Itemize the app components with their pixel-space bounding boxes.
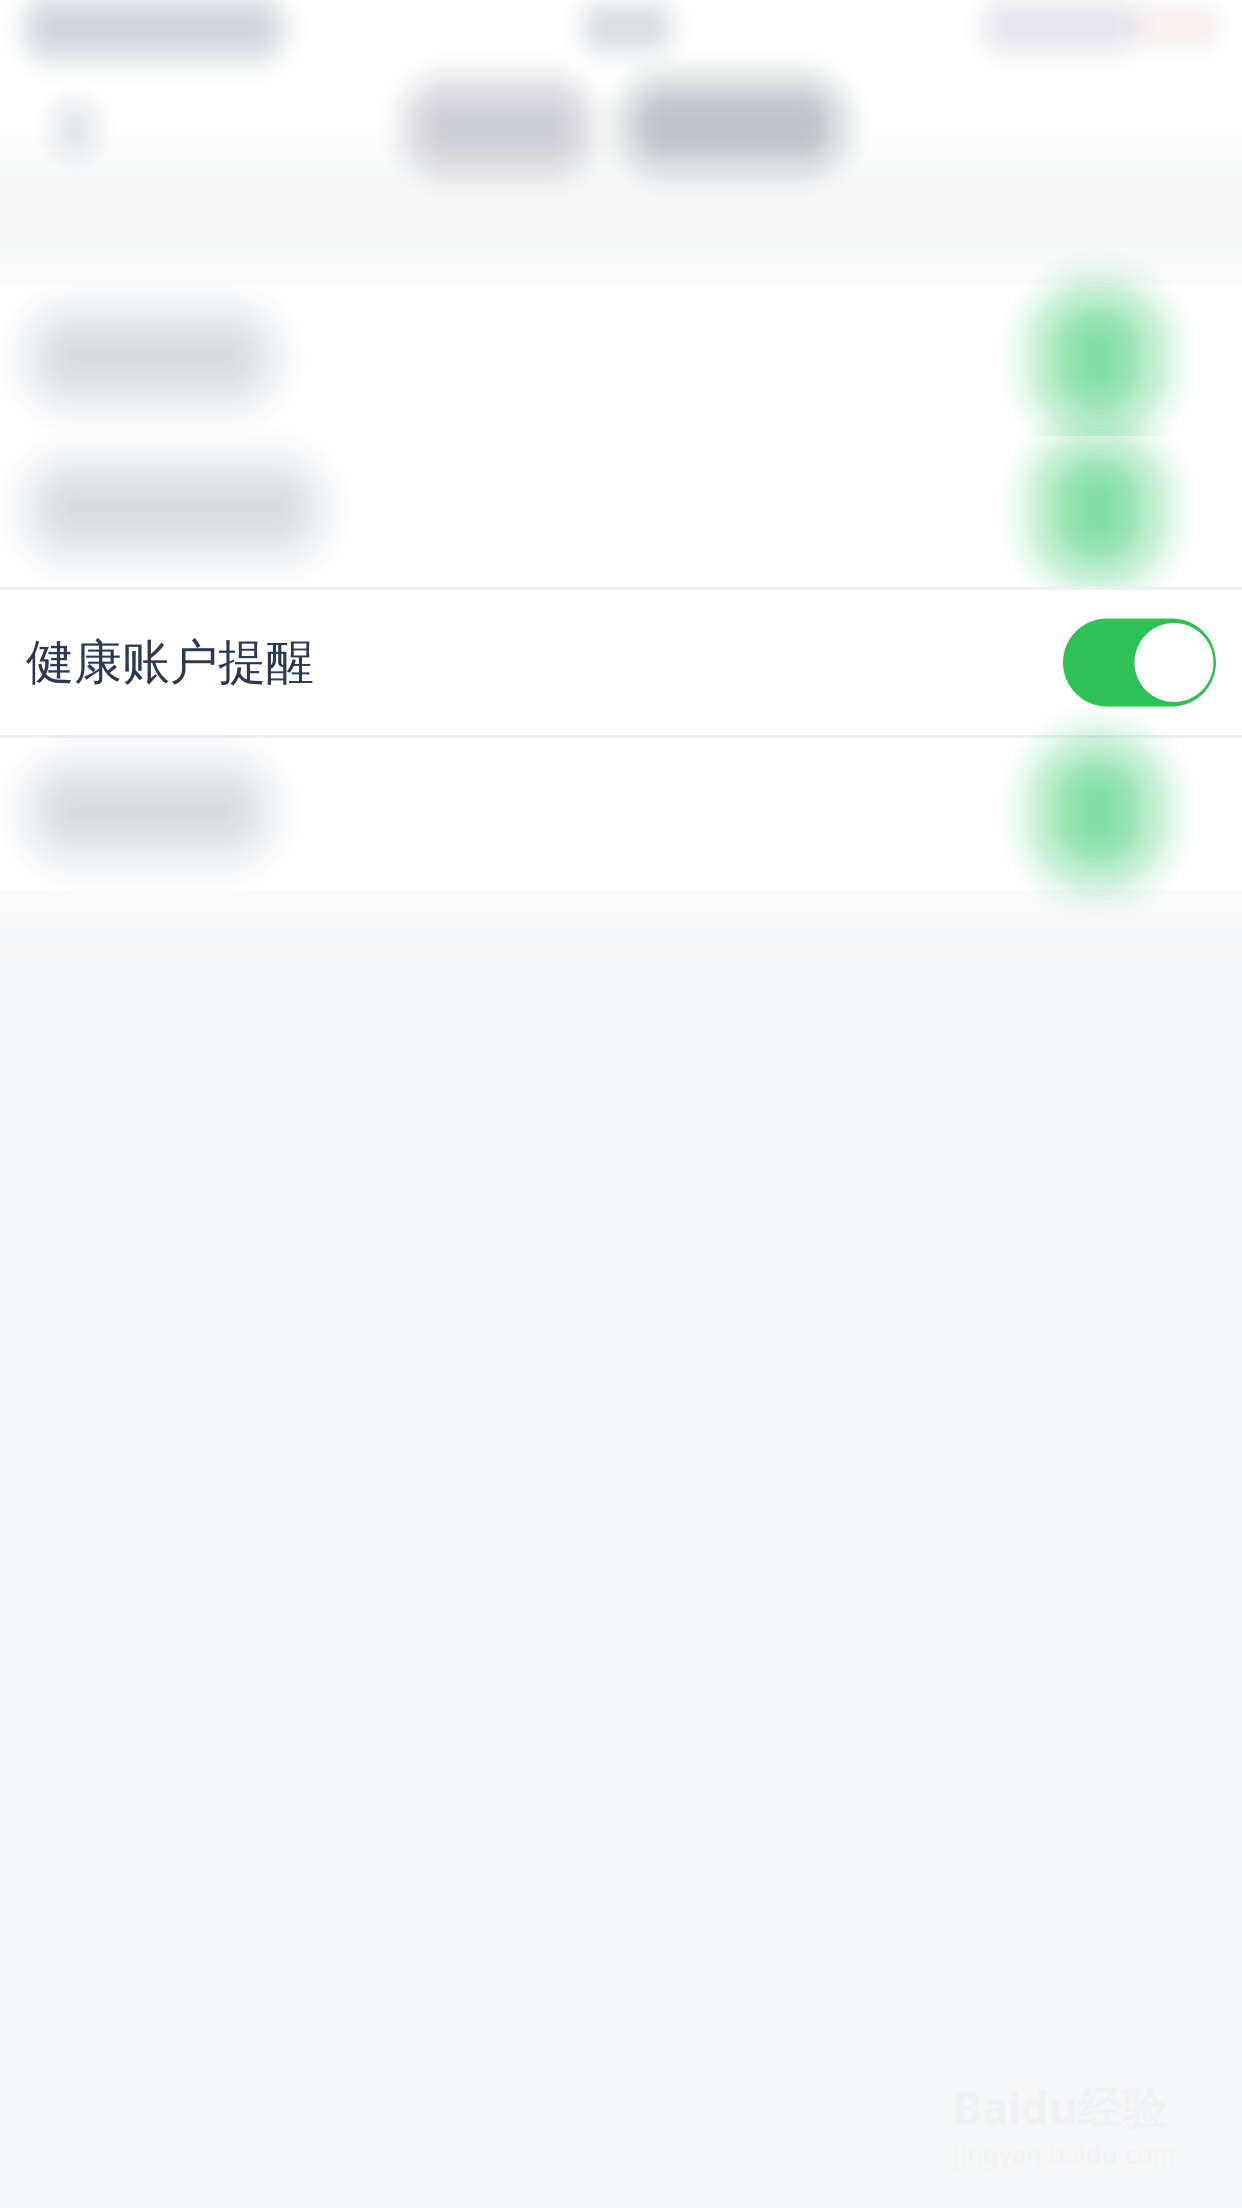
button[interactable] bbox=[0, 738, 1242, 889]
button[interactable]: 健康账户提醒 bbox=[0, 587, 1242, 738]
button[interactable]: Back bbox=[0, 63, 150, 193]
button[interactable] bbox=[0, 436, 1242, 587]
button[interactable] bbox=[0, 285, 1242, 436]
staticText: 健康账户提醒 bbox=[26, 633, 314, 692]
